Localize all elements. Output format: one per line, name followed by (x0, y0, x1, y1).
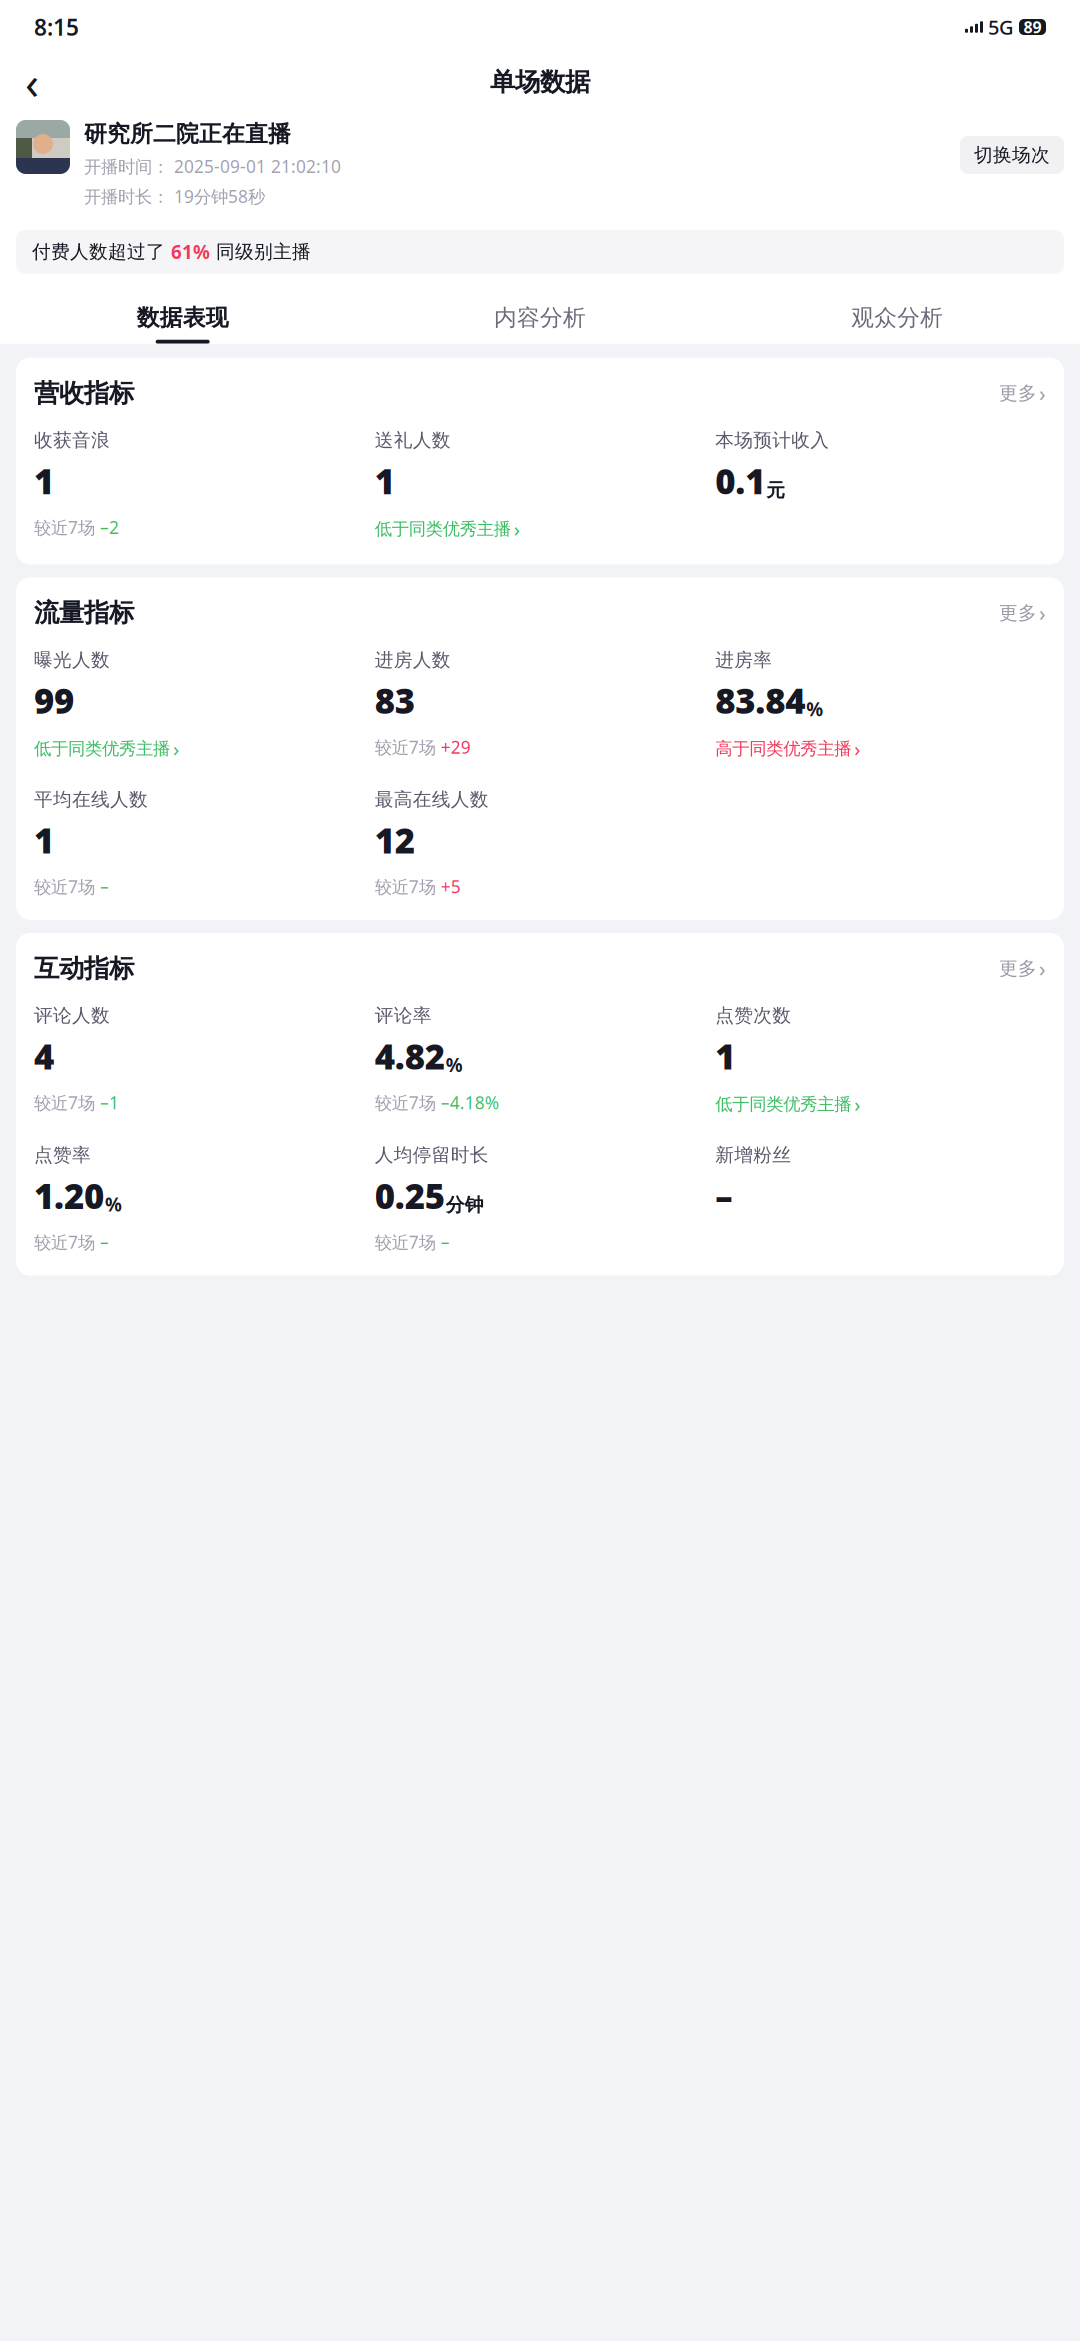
staticText: – (100, 875, 109, 898)
staticText: 83.84 (715, 677, 805, 723)
staticText: 新增粉丝 (715, 1144, 791, 1166)
staticText: –2 (100, 516, 119, 539)
staticText: › (854, 735, 860, 762)
staticText: 较近7场 (34, 1091, 95, 1114)
staticText: 平均在线人数 (34, 788, 148, 811)
button[interactable]: 更多 (999, 954, 1046, 983)
button[interactable]: 切换场次 (960, 136, 1064, 174)
staticText: 61% (171, 239, 210, 264)
staticText: 83 (375, 677, 415, 723)
staticText: % (446, 1052, 463, 1077)
staticText: 99 (34, 677, 74, 723)
staticText: 低于同类优秀主播 (34, 738, 170, 759)
staticText: 开播时长： 19分钟58秒 (84, 185, 265, 208)
staticText: 进房率 (715, 648, 772, 671)
staticText: % (105, 1192, 122, 1217)
staticText: 送礼人数 (375, 429, 451, 452)
staticText: 研究所二院正在直播 (84, 120, 291, 148)
button[interactable]: 更多 (999, 379, 1046, 407)
staticText: › (1039, 954, 1046, 983)
staticText: +29 (441, 735, 471, 758)
staticText: 进房人数 (375, 648, 451, 671)
staticText: 1 (375, 458, 395, 504)
staticText: 元 (766, 479, 785, 502)
button[interactable]: 内容分析 (361, 304, 719, 344)
staticText: 高于同类优秀主播 (715, 738, 851, 759)
staticText: 互动指标 (34, 953, 134, 984)
staticText: 更多 (999, 957, 1037, 980)
staticText: 流量指标 (34, 597, 134, 628)
staticText: 收获音浪 (34, 429, 110, 452)
staticText: – (441, 1231, 450, 1254)
staticText: 本场预计收入 (715, 429, 829, 452)
staticText: › (173, 735, 179, 762)
staticText: 付费人数超过了 (32, 240, 171, 263)
staticText: 1.20 (34, 1173, 104, 1219)
staticText: – (100, 1231, 109, 1254)
staticText: › (1039, 379, 1046, 407)
button[interactable]: 数据表现 (4, 304, 361, 344)
button[interactable]: 观众分析 (719, 304, 1076, 344)
staticText: 人均停留时长 (375, 1144, 489, 1166)
staticText: 最高在线人数 (375, 788, 489, 811)
staticText: 评论人数 (34, 1004, 110, 1027)
staticText: 数据表现 (137, 304, 229, 332)
staticText: 4 (34, 1033, 54, 1079)
staticText: 较近7场 (34, 1231, 95, 1254)
staticText: › (1039, 599, 1046, 627)
staticText: 较近7场 (375, 1231, 436, 1254)
staticText: 较近7场 (34, 875, 95, 898)
staticText: 点赞次数 (715, 1004, 791, 1027)
staticText: 12 (375, 817, 415, 863)
staticText: 内容分析 (494, 304, 586, 332)
staticText: 营收指标 (34, 378, 134, 409)
staticText: 更多 (999, 382, 1037, 405)
staticText: 低于同类优秀主播 (375, 518, 511, 540)
staticText: 5G (988, 14, 1014, 40)
staticText: 低于同类优秀主播 (715, 1094, 851, 1115)
button[interactable]: 更多 (999, 599, 1046, 627)
staticText: –4.18% (441, 1091, 499, 1114)
staticText: 1 (715, 1033, 735, 1079)
staticText: 观众分析 (851, 304, 943, 332)
staticText: 较近7场 (375, 735, 436, 758)
staticText: 更多 (999, 601, 1037, 624)
staticText: 评论率 (375, 1004, 432, 1027)
staticText: 较近7场 (34, 516, 95, 539)
staticText: › (854, 1091, 860, 1118)
staticText: 开播时间： 2025-09-01 21:02:10 (84, 155, 341, 178)
staticText: – (715, 1173, 732, 1219)
staticText: › (514, 516, 520, 542)
staticText: 同级别主播 (210, 240, 311, 263)
staticText: 1 (34, 817, 54, 863)
staticText: 单场数据 (490, 66, 590, 97)
staticText: 0.1 (715, 458, 765, 504)
staticText: +5 (441, 875, 461, 898)
staticText: 89 (1023, 16, 1041, 38)
staticText: % (806, 697, 823, 721)
staticText: 0.25 (375, 1173, 445, 1219)
staticText: ‹ (25, 52, 39, 112)
staticText: 切换场次 (974, 143, 1050, 166)
staticText: 较近7场 (375, 1091, 436, 1114)
staticText: 1 (34, 458, 54, 504)
staticText: 4.82 (375, 1033, 445, 1079)
staticText: 点赞率 (34, 1144, 91, 1166)
staticText: 分钟 (446, 1194, 484, 1217)
staticText: 8:15 (34, 12, 79, 42)
staticText: 较近7场 (375, 875, 436, 898)
button[interactable]: Back (10, 60, 54, 104)
staticText: –1 (100, 1091, 119, 1114)
staticText: 曝光人数 (34, 648, 110, 671)
